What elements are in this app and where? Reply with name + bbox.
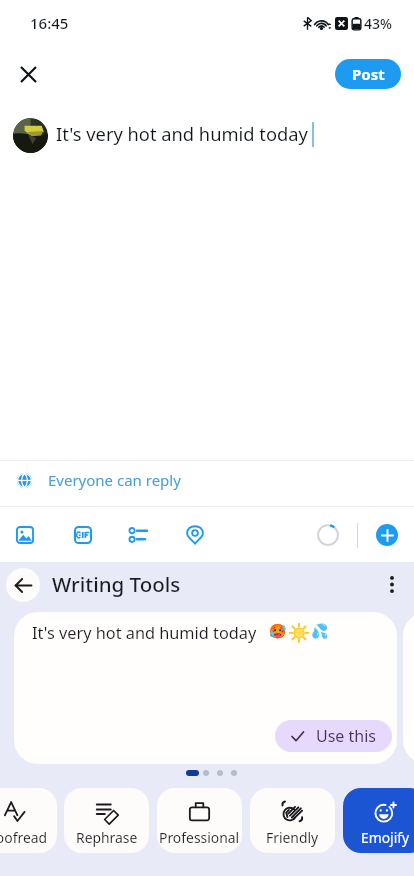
- button[interactable]: Profile picture: [13, 118, 48, 153]
- staticText: 💦: [311, 623, 329, 639]
- button[interactable]: Add GIF: [63, 515, 103, 555]
- button[interactable]: Add poll: [118, 515, 158, 555]
- button[interactable]: It's very hot and humid today: [14, 612, 397, 764]
- staticText: 🥵: [269, 623, 287, 639]
- button[interactable]: Proofread: [0, 788, 57, 853]
- staticText: Professional: [159, 828, 240, 847]
- staticText: Friendly: [266, 828, 319, 847]
- button[interactable]: Use this: [275, 720, 392, 752]
- staticText: Use this: [316, 725, 377, 747]
- button[interactable]: Add location: [175, 515, 215, 555]
- button[interactable]: Rephrase: [64, 788, 149, 853]
- staticText: Everyone can reply: [48, 470, 181, 490]
- button[interactable]: Everyone can reply: [0, 461, 414, 499]
- button[interactable]: Close: [6, 52, 50, 96]
- staticText: Proofread: [0, 828, 48, 847]
- staticText: Post: [352, 64, 385, 84]
- staticText: 43%: [364, 14, 392, 33]
- button[interactable]: Emojify: [343, 788, 414, 853]
- button[interactable]: Add photo: [5, 515, 45, 555]
- button[interactable]: Post: [335, 59, 401, 89]
- staticText: Writing Tools: [52, 570, 181, 598]
- button[interactable]: Professional: [157, 788, 242, 853]
- staticText: Emojify: [361, 828, 410, 847]
- button[interactable]: Back: [6, 568, 40, 602]
- button[interactable]: Friendly: [250, 788, 335, 853]
- staticText: Rephrase: [76, 828, 138, 847]
- staticText: It's very hot and humid today: [32, 622, 257, 644]
- button[interactable]: Add another post: [376, 524, 398, 546]
- button[interactable]: More options: [376, 568, 408, 600]
- staticText: 16:45: [30, 13, 69, 33]
- staticText: It's very hot and humid today: [56, 121, 308, 146]
